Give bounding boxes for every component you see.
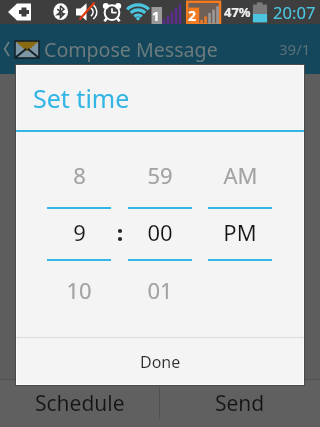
button[interactable]: Send xyxy=(160,379,320,427)
staticText: AM xyxy=(223,160,258,184)
button[interactable]: PM xyxy=(208,217,272,242)
button[interactable]: Done xyxy=(16,338,304,385)
staticText: PM xyxy=(223,217,257,242)
staticText: 39/1 xyxy=(279,39,311,59)
staticText: 47% xyxy=(224,3,251,21)
staticText: 2 xyxy=(188,6,197,25)
button[interactable]: 8 xyxy=(47,160,111,184)
button[interactable]: 59 xyxy=(128,160,192,184)
button[interactable]: Schedule xyxy=(0,379,159,427)
staticText: 00 xyxy=(147,217,173,242)
staticText: 9 xyxy=(73,217,86,242)
button[interactable]: 00 xyxy=(128,217,192,242)
staticText: Done xyxy=(140,351,181,373)
staticText: Send xyxy=(215,389,265,418)
button[interactable]: 9 xyxy=(47,217,111,242)
staticText: 20:07 xyxy=(273,1,316,24)
staticText: Compose Message xyxy=(44,36,218,63)
staticText: Schedule xyxy=(35,389,125,418)
staticText: 1 xyxy=(152,7,160,25)
staticText: 10 xyxy=(66,275,92,299)
staticText: 8 xyxy=(73,160,86,184)
button[interactable]: 10 xyxy=(47,275,111,299)
staticText: 01 xyxy=(147,275,173,299)
button[interactable]: 01 xyxy=(128,275,192,299)
button[interactable]: AM xyxy=(208,160,272,184)
staticText: 59 xyxy=(147,160,173,184)
button[interactable]: Up xyxy=(0,24,320,74)
staticText: Set time xyxy=(33,81,130,115)
